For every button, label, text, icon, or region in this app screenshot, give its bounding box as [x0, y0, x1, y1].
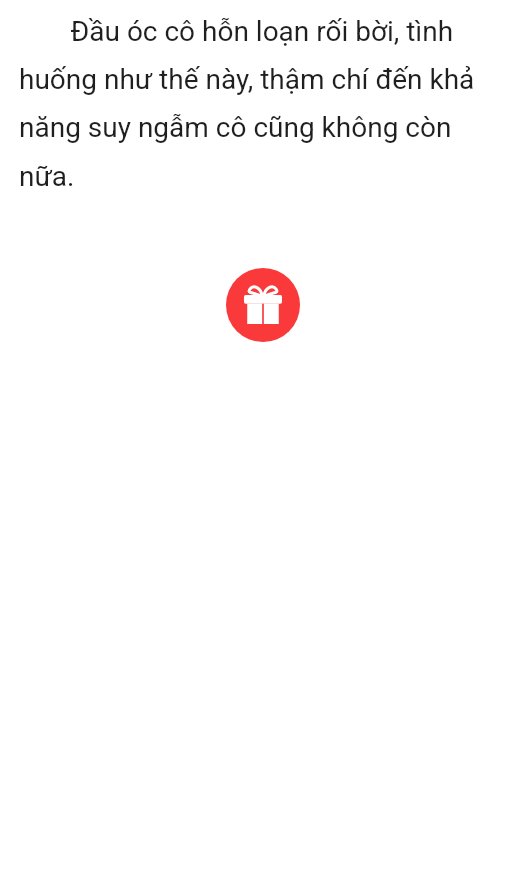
staticText: năng suy ngẫm cô cũng không còn — [19, 111, 505, 144]
staticText: huống như thế này, thậm chí đến khả — [19, 63, 505, 96]
staticText: nữa. — [19, 160, 505, 193]
button[interactable]: Open gift — [226, 268, 300, 342]
staticText: Đầu óc cô hỗn loạn rối bời, tình — [19, 15, 505, 48]
